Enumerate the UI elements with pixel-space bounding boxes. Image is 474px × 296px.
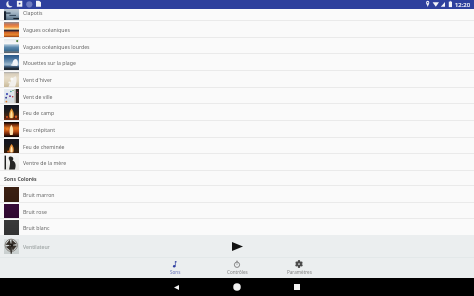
button[interactable]: Ventre de la mère	[0, 154, 474, 171]
staticText: Clapotis	[23, 9, 43, 16]
staticText: Vagues océaniques	[23, 26, 70, 33]
button[interactable]: Vent d'hiver	[0, 71, 474, 88]
staticText: Bruit blanc	[23, 224, 50, 231]
button[interactable]: Bruit marron	[0, 186, 474, 203]
button[interactable]: Feu crépitant	[0, 121, 474, 138]
button[interactable]: Bruit rose	[0, 203, 474, 220]
staticText: Feu de camp	[23, 109, 55, 116]
button[interactable]: Feu de camp	[0, 104, 474, 121]
button[interactable]: Lecture	[228, 237, 246, 255]
staticText: Vent de ville	[23, 93, 53, 100]
staticText: Bruit rose	[23, 208, 47, 215]
button[interactable]: Retour	[167, 278, 186, 296]
button[interactable]: Ventilateur	[0, 235, 50, 257]
staticText: Sons	[170, 269, 181, 275]
staticText: Ventre de la mère	[23, 159, 67, 166]
button[interactable]: Clapotis	[0, 4, 474, 21]
staticText: Paramètres	[287, 269, 312, 275]
button[interactable]: Feu de cheminée	[0, 138, 474, 155]
staticText: Sons Colorés	[4, 175, 37, 182]
staticText: Feu de cheminée	[23, 143, 65, 150]
staticText: Feu crépitant	[23, 126, 56, 133]
staticText: Bruit marron	[23, 191, 55, 198]
staticText: Contrôles	[227, 269, 248, 275]
button[interactable]: Contrôles	[206, 258, 268, 278]
button[interactable]: Paramètres	[268, 258, 330, 278]
button[interactable]: Mouettes sur la plage	[0, 54, 474, 71]
button[interactable]: Vagues océaniques lourdes	[0, 38, 474, 55]
button[interactable]: Applications récentes	[287, 278, 306, 296]
staticText: Vent d'hiver	[23, 76, 52, 83]
staticText: Mouettes sur la plage	[23, 59, 76, 66]
staticText: 12:20	[455, 1, 471, 9]
button[interactable]: Sons	[144, 258, 206, 278]
button[interactable]: Vagues océaniques	[0, 21, 474, 38]
staticText: Vagues océaniques lourdes	[23, 43, 90, 50]
button[interactable]: Bruit blanc	[0, 219, 474, 235]
button[interactable]: Vent de ville	[0, 88, 474, 105]
staticText: Ventilateur	[23, 243, 50, 250]
button[interactable]: Accueil	[227, 278, 246, 296]
